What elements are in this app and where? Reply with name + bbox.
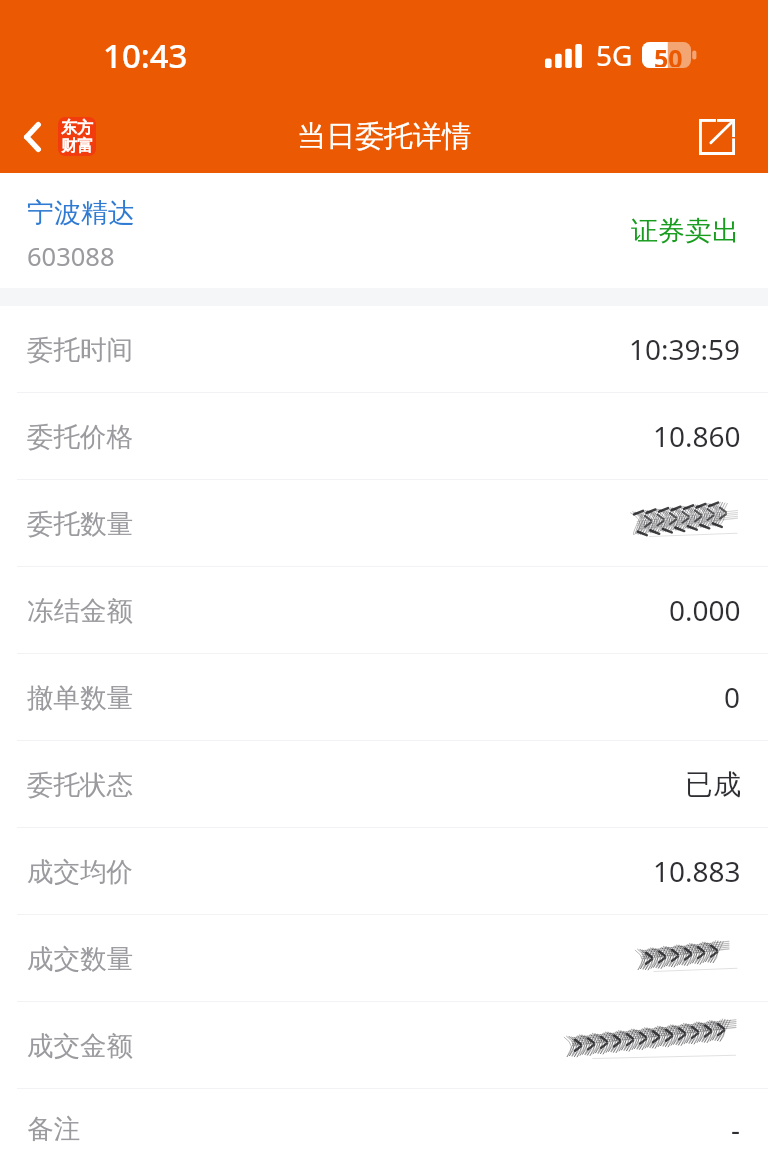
- staticText: 10.860: [653, 417, 741, 455]
- staticText: 10:39:59: [629, 330, 741, 368]
- staticText: 备注: [27, 1112, 80, 1145]
- staticText: 成交金额: [27, 1029, 133, 1062]
- button[interactable]: 成交数量: [0, 915, 768, 1001]
- staticText: 宁波精达: [27, 196, 135, 230]
- staticText: 当日委托详情: [297, 118, 471, 155]
- staticText: 0: [724, 678, 741, 716]
- button[interactable]: 宁波精达: [0, 173, 768, 288]
- button[interactable]: 备注: [0, 1089, 768, 1168]
- button[interactable]: 委托价格: [0, 393, 768, 479]
- staticText: 0.000: [669, 591, 741, 629]
- button[interactable]: Back: [0, 109, 106, 164]
- staticText: 10.883: [653, 852, 741, 890]
- button[interactable]: 委托数量: [0, 480, 768, 566]
- button[interactable]: 成交均价: [0, 828, 768, 914]
- staticText: 东方 财富: [61, 118, 93, 155]
- staticText: 委托状态: [27, 768, 133, 801]
- button[interactable]: 冻结金额: [0, 567, 768, 653]
- staticText: 委托时间: [27, 333, 133, 366]
- staticText: 成交数量: [27, 942, 133, 975]
- staticText: -: [731, 1110, 741, 1148]
- staticText: 证券卖出: [631, 214, 739, 248]
- button[interactable]: 成交金额: [0, 1002, 768, 1088]
- staticText: 撤单数量: [27, 681, 133, 714]
- button[interactable]: 委托状态: [0, 741, 768, 827]
- staticText: 成交均价: [27, 855, 133, 888]
- staticText: 委托价格: [27, 420, 133, 453]
- button[interactable]: 委托时间: [0, 306, 768, 392]
- staticText: 10:43: [103, 33, 188, 78]
- staticText: 冻结金额: [27, 594, 133, 627]
- staticText: 603088: [27, 239, 115, 274]
- staticText: 委托数量: [27, 507, 133, 540]
- staticText: 50: [654, 41, 683, 67]
- button[interactable]: 撤单数量: [0, 654, 768, 740]
- staticText: 已成: [685, 767, 741, 802]
- button[interactable]: Share: [682, 110, 768, 164]
- staticText: 5G: [596, 36, 633, 74]
